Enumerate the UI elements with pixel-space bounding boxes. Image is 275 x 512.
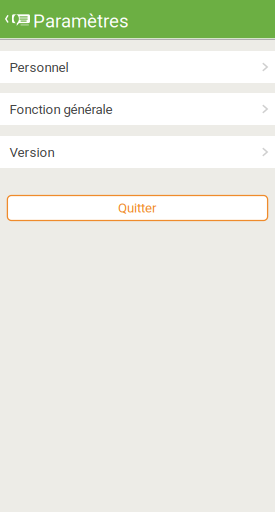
staticText: Paramètres — [33, 10, 129, 32]
staticText: Quitter — [118, 200, 157, 216]
staticText: Version — [9, 145, 54, 160]
button[interactable]: Quitter — [7, 195, 268, 220]
button[interactable]: Personnel — [0, 51, 275, 83]
button[interactable]: Version — [0, 136, 275, 168]
staticText: Fonction générale — [9, 102, 112, 117]
button[interactable]: Back — [0, 0, 33, 38]
button[interactable]: Fonction générale — [0, 93, 275, 125]
staticText: Personnel — [9, 60, 68, 75]
